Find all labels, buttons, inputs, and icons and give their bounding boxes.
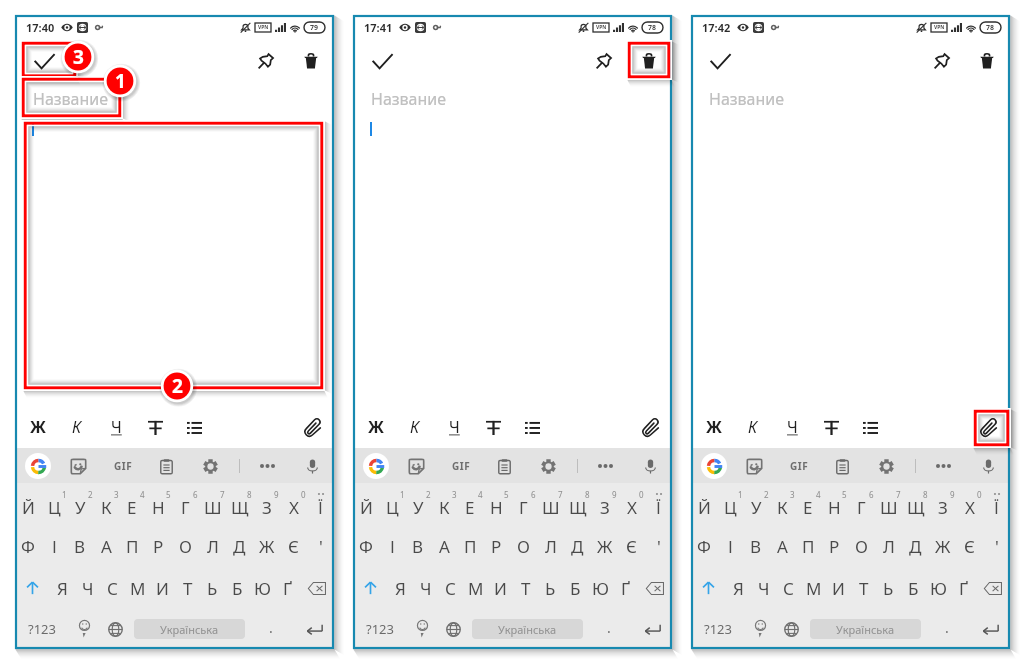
button[interactable]: Backspace — [638, 567, 672, 609]
button[interactable]: Delete note — [970, 44, 1004, 78]
button[interactable]: К — [93, 483, 119, 525]
button[interactable]: Shift — [691, 567, 726, 609]
button[interactable]: Strikethrough — [818, 414, 844, 440]
button[interactable]: П — [119, 525, 145, 567]
button[interactable]: К — [402, 414, 428, 440]
button[interactable]: ' — [645, 525, 672, 567]
button[interactable]: Д — [564, 525, 591, 567]
button[interactable]: П — [795, 525, 821, 567]
button[interactable]: М — [125, 567, 150, 609]
button[interactable]: І — [41, 525, 67, 567]
button[interactable]: Ж — [363, 414, 389, 440]
button[interactable]: А — [93, 525, 119, 567]
button[interactable]: ?123 — [353, 609, 407, 649]
button[interactable]: Attach file — [638, 414, 664, 440]
button[interactable]: Change language — [775, 609, 808, 649]
button[interactable]: Е — [457, 483, 483, 525]
button[interactable]: Backspace — [976, 567, 1010, 609]
button[interactable]: Enter — [970, 609, 1010, 649]
button[interactable]: Г — [172, 483, 199, 525]
button[interactable]: Т — [513, 567, 538, 609]
button[interactable]: І — [717, 525, 743, 567]
button[interactable]: Т — [175, 567, 200, 609]
button[interactable]: Save note — [27, 44, 61, 78]
button[interactable]: У — [67, 483, 93, 525]
button[interactable]: А — [431, 525, 457, 567]
button[interactable]: Ч — [413, 567, 438, 609]
button[interactable]: Г — [848, 483, 875, 525]
button[interactable]: Ч — [441, 414, 467, 440]
button[interactable]: ' — [307, 525, 334, 567]
button[interactable]: С — [100, 567, 125, 609]
button[interactable]: І — [379, 525, 405, 567]
button[interactable]: Ш — [199, 483, 226, 525]
button[interactable]: ?123 — [15, 609, 69, 649]
button[interactable]: Ч — [779, 414, 805, 440]
button[interactable]: Emoji — [69, 609, 99, 649]
button[interactable]: Н — [483, 483, 510, 525]
button[interactable]: Voice input — [975, 453, 1001, 479]
button[interactable]: Ю — [926, 567, 951, 609]
button[interactable]: Strikethrough — [142, 414, 168, 440]
button[interactable]: И — [826, 567, 851, 609]
button[interactable]: Ш — [537, 483, 564, 525]
button[interactable]: Ґ — [275, 567, 300, 609]
button[interactable]: Ф — [353, 525, 379, 567]
button[interactable]: Backspace — [300, 567, 334, 609]
button[interactable]: Х — [956, 483, 983, 525]
button[interactable]: Ю — [588, 567, 613, 609]
button[interactable]: Л — [199, 525, 226, 567]
button[interactable]: Ь — [876, 567, 901, 609]
button[interactable]: More options — [254, 453, 280, 479]
button[interactable]: Ь — [538, 567, 563, 609]
button[interactable]: Д — [226, 525, 253, 567]
button[interactable]: У — [743, 483, 769, 525]
button[interactable]: Г — [510, 483, 537, 525]
button[interactable]: Р — [483, 525, 510, 567]
button[interactable]: ?123 — [691, 609, 745, 649]
button[interactable]: Ц — [379, 483, 405, 525]
button[interactable]: Щ — [902, 483, 929, 525]
button[interactable]: Е — [795, 483, 821, 525]
button[interactable]: Ж — [25, 414, 51, 440]
button[interactable]: Pin note — [925, 44, 959, 78]
button[interactable]: Ж — [929, 525, 956, 567]
button[interactable]: Б — [901, 567, 926, 609]
button[interactable]: Keyboard settings — [197, 453, 223, 479]
button[interactable]: . — [923, 609, 970, 649]
button[interactable]: Keyboard settings — [873, 453, 899, 479]
button[interactable]: Б — [563, 567, 588, 609]
button[interactable]: Ф — [691, 525, 717, 567]
button[interactable]: More options — [930, 453, 956, 479]
button[interactable]: Ц — [41, 483, 67, 525]
button[interactable]: Ж — [253, 525, 280, 567]
button[interactable]: Н — [821, 483, 848, 525]
button[interactable]: Shift — [15, 567, 50, 609]
button[interactable]: Stickers — [741, 453, 767, 479]
button[interactable]: Change language — [437, 609, 470, 649]
button[interactable]: А — [769, 525, 795, 567]
button[interactable]: Ї — [645, 483, 672, 525]
button[interactable]: З — [253, 483, 280, 525]
button[interactable]: Щ — [564, 483, 591, 525]
button[interactable]: О — [172, 525, 199, 567]
button[interactable]: Я — [50, 567, 75, 609]
button[interactable]: Є — [956, 525, 983, 567]
button[interactable]: Clipboard — [829, 453, 855, 479]
button[interactable]: С — [438, 567, 463, 609]
button[interactable]: Р — [821, 525, 848, 567]
button[interactable]: Save note — [365, 44, 399, 78]
button[interactable]: Р — [145, 525, 172, 567]
button[interactable]: Bulleted list — [857, 414, 883, 440]
button[interactable]: Pin note — [249, 44, 283, 78]
button[interactable]: Ч — [75, 567, 100, 609]
button[interactable]: Delete note — [632, 44, 666, 78]
button[interactable]: Ч — [751, 567, 776, 609]
button[interactable]: Emoji — [745, 609, 775, 649]
button[interactable]: Ї — [983, 483, 1010, 525]
button[interactable]: Strikethrough — [480, 414, 506, 440]
button[interactable]: М — [463, 567, 488, 609]
button[interactable]: Й — [15, 483, 41, 525]
button[interactable]: Shift — [353, 567, 388, 609]
button[interactable]: Ч — [103, 414, 129, 440]
